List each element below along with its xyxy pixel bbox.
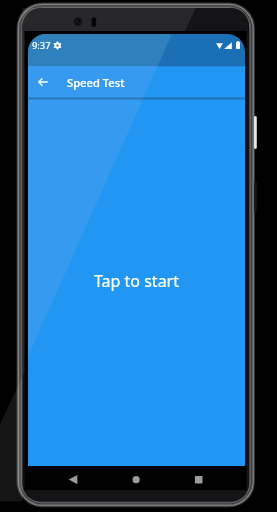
button[interactable]: Back	[28, 66, 57, 98]
staticText: Tap to start	[94, 270, 180, 292]
staticText: 9:37	[32, 39, 51, 52]
button[interactable]: Tap to start	[28, 98, 245, 466]
staticText: Speed Test	[67, 75, 125, 90]
